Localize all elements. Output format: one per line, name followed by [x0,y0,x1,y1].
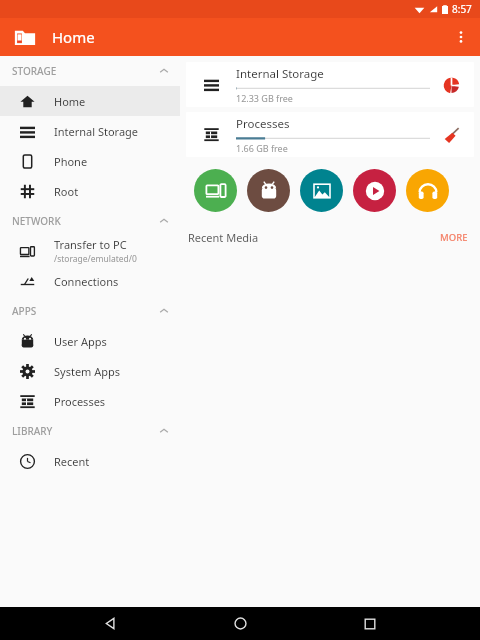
button[interactable]: Internal Storage [186,62,474,107]
staticText: NETWORK [12,214,61,228]
staticText: APPS [12,304,37,318]
button[interactable]: Recent apps [350,607,390,640]
button[interactable]: Storage analysis [436,70,466,100]
button[interactable]: Connections [0,266,180,296]
staticText: User Apps [54,334,107,349]
staticText: Internal Storage [236,66,324,82]
button[interactable]: Images [300,169,343,212]
button[interactable]: Back [90,607,130,640]
staticText: Root [54,184,79,199]
staticText: Internal Storage [54,124,139,139]
staticText: Recent [54,454,90,469]
button[interactable]: Internal Storage [0,116,180,146]
button[interactable]: Recent [0,446,180,476]
button[interactable]: Processes [186,112,474,157]
staticText: /storage/emulated/0 [54,253,137,265]
button[interactable]: Clean processes [436,120,466,150]
button[interactable]: Processes [0,386,180,416]
button[interactable]: MORE [436,229,472,246]
button[interactable]: More options [442,18,480,56]
button[interactable]: Phone [0,146,180,176]
button[interactable]: Home [220,607,260,640]
staticText: 1.66 GB free [236,142,288,154]
button[interactable]: LIBRARY [0,416,180,446]
staticText: Recent Media [188,230,259,245]
button[interactable]: App icon [12,24,38,50]
staticText: 8:57 [452,2,472,16]
button[interactable]: NETWORK [0,206,180,236]
button[interactable]: System Apps [0,356,180,386]
staticText: 12.33 GB free [236,92,293,104]
button[interactable]: STORAGE [0,56,180,86]
button[interactable]: Transfer to PC [0,236,180,266]
staticText: Processes [54,394,106,409]
staticText: System Apps [54,364,121,379]
button[interactable]: Root [0,176,180,206]
button[interactable]: Video [353,169,396,212]
button[interactable]: User Apps [0,326,180,356]
button[interactable]: Home [0,86,180,116]
staticText: LIBRARY [12,424,53,438]
staticText: Phone [54,154,88,169]
staticText: Home [52,27,95,47]
button[interactable]: Cast [194,169,237,212]
button[interactable]: Apps [247,169,290,212]
button[interactable]: APPS [0,296,180,326]
staticText: Processes [236,116,290,132]
staticText: Home [54,94,86,109]
staticText: STORAGE [12,64,57,78]
staticText: MORE [440,231,468,244]
staticText: Transfer to PC [54,237,127,252]
staticText: Connections [54,274,119,289]
button[interactable]: Audio [406,169,449,212]
